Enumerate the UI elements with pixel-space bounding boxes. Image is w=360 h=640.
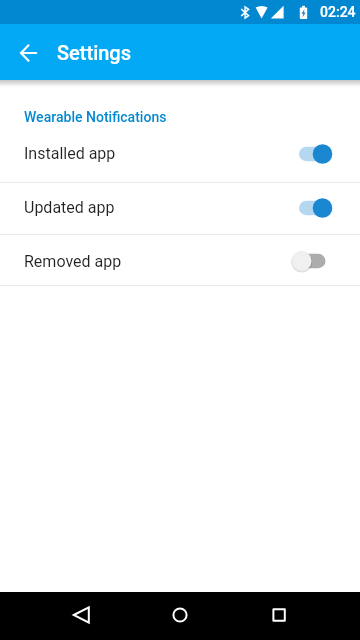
button[interactable]: Installed app: [0, 131, 360, 182]
button[interactable]: [240, 592, 360, 640]
staticText: Installed app: [24, 144, 116, 163]
staticText: Settings: [57, 41, 132, 64]
button[interactable]: [290, 197, 334, 219]
staticText: 02:24: [320, 4, 356, 20]
button[interactable]: [290, 250, 334, 272]
button[interactable]: Removed app: [0, 235, 360, 285]
staticText: Removed app: [24, 252, 122, 271]
staticText: Wearable Notifications: [24, 109, 167, 125]
button[interactable]: [120, 592, 240, 640]
button[interactable]: Updated app: [0, 183, 360, 234]
button[interactable]: [0, 592, 120, 640]
staticText: Updated app: [24, 198, 115, 217]
button[interactable]: [290, 143, 334, 165]
button[interactable]: [0, 24, 56, 80]
